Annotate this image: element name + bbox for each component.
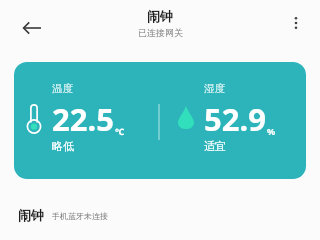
button[interactable]: Back <box>12 8 52 48</box>
button[interactable]: 闹钟 <box>18 203 320 227</box>
button[interactable]: 温度 <box>14 62 306 179</box>
staticText: 已连接网关 <box>138 27 183 38</box>
staticText: 略低 <box>52 139 74 153</box>
staticText: 手机蓝牙未连接 <box>52 211 108 221</box>
staticText: 闹钟 <box>18 207 44 223</box>
staticText: 闹钟 <box>147 8 173 24</box>
button[interactable]: More options <box>278 5 314 41</box>
staticText: % <box>267 125 276 137</box>
staticText: 温度 <box>52 82 73 95</box>
staticText: 湿度 <box>204 82 225 95</box>
staticText: 适宜 <box>204 139 226 153</box>
staticText: 52.9 <box>204 98 266 140</box>
staticText: 22.5 <box>52 98 114 140</box>
staticText: ℃ <box>115 125 125 137</box>
